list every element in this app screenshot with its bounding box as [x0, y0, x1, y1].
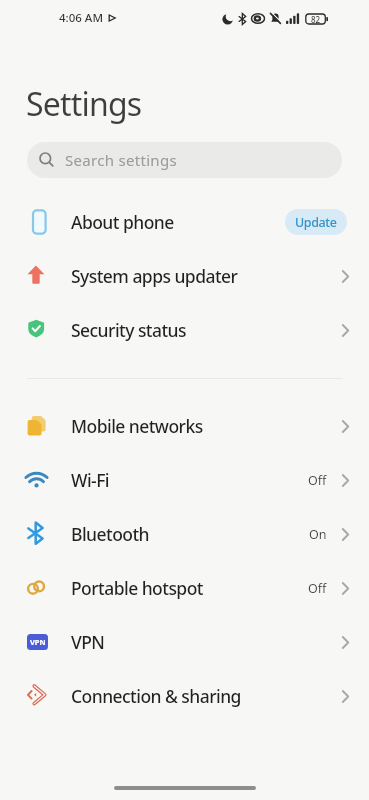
button[interactable]: Wi-Fi — [0, 453, 369, 507]
staticText: VPN — [71, 630, 105, 654]
button[interactable]: Connection & sharing — [0, 669, 369, 723]
staticText: Off — [308, 472, 327, 489]
button[interactable]: About phone — [0, 195, 369, 249]
staticText: Wi-Fi — [71, 468, 110, 492]
staticText: On — [309, 526, 327, 543]
staticText: Search settings — [65, 150, 177, 170]
staticText: Mobile networks — [71, 414, 203, 438]
button[interactable]: Bluetooth — [0, 507, 369, 561]
button[interactable]: Portable hotspot — [0, 561, 369, 615]
staticText: Security status — [71, 318, 187, 342]
staticText: 82 — [311, 14, 321, 25]
staticText: 4:06 AM — [59, 10, 103, 26]
button[interactable]: Mobile networks — [0, 399, 369, 453]
staticText: Connection & sharing — [71, 684, 241, 708]
staticText: VPN — [30, 637, 46, 647]
staticText: Bluetooth — [71, 522, 149, 546]
button[interactable]: System apps updater — [0, 249, 369, 303]
staticText: Update — [295, 214, 337, 231]
staticText: Portable hotspot — [71, 576, 203, 600]
staticText: System apps updater — [71, 264, 238, 288]
button[interactable]: Security status — [0, 303, 369, 357]
button[interactable]: Search settings — [27, 142, 342, 178]
staticText: Settings — [26, 82, 142, 126]
button[interactable]: VPN — [0, 615, 369, 669]
staticText: About phone — [71, 210, 174, 234]
staticText: Off — [308, 580, 327, 597]
button[interactable]: Update — [285, 209, 347, 235]
